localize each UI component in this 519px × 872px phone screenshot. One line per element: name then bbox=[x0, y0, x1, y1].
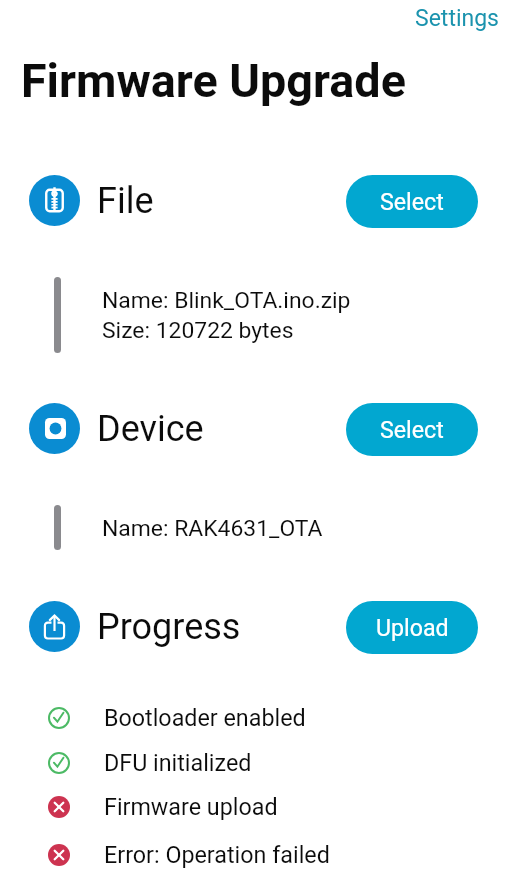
button[interactable]: Select bbox=[346, 175, 478, 228]
staticText: Error: Operation failed bbox=[104, 841, 330, 868]
button[interactable]: Error: Operation failed bbox=[24, 832, 424, 872]
staticText: Upload bbox=[376, 614, 449, 641]
staticText: Progress bbox=[97, 606, 241, 648]
button[interactable]: File bbox=[29, 175, 80, 226]
button[interactable]: Device bbox=[29, 403, 80, 454]
staticText: Device bbox=[97, 408, 204, 450]
button[interactable]: Select bbox=[346, 403, 478, 456]
staticText: DFU initialized bbox=[104, 749, 252, 776]
staticText: Firmware upload bbox=[104, 793, 278, 820]
button[interactable]: Progress bbox=[29, 601, 80, 652]
button[interactable]: Upload bbox=[346, 601, 478, 654]
staticText: File bbox=[97, 180, 154, 222]
staticText: Name: RAK4631_OTA bbox=[102, 515, 323, 542]
button[interactable]: Bootloader enabled bbox=[24, 695, 424, 739]
staticText: Size: 120722 bytes bbox=[102, 317, 294, 344]
staticText: Settings bbox=[415, 5, 499, 32]
button[interactable]: Settings bbox=[402, 0, 512, 36]
staticText: Bootloader enabled bbox=[104, 704, 306, 731]
button[interactable]: Firmware upload bbox=[24, 784, 424, 828]
staticText: Firmware Upgrade bbox=[21, 54, 406, 109]
staticText: Select bbox=[380, 188, 444, 215]
staticText: Name: Blink_OTA.ino.zip bbox=[102, 287, 351, 314]
button[interactable]: DFU initialized bbox=[24, 740, 424, 784]
staticText: Select bbox=[380, 416, 444, 443]
